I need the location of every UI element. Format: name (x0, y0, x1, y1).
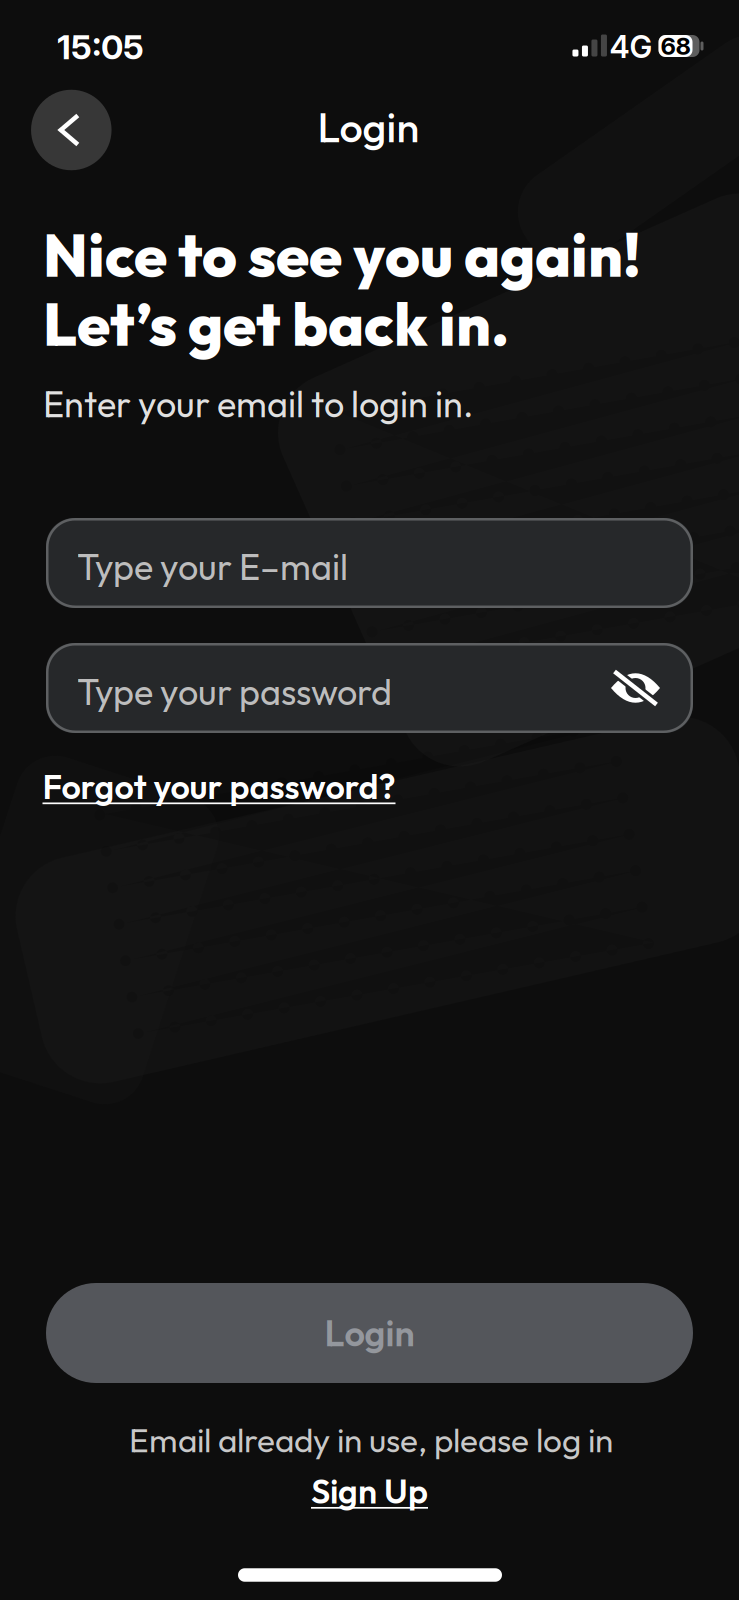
staticText: Forgot your password? (42, 765, 395, 808)
staticText: Nice to see you again! (43, 217, 641, 292)
button[interactable]: Sign Up (311, 1470, 428, 1512)
staticText: 15:05 (57, 26, 144, 67)
button[interactable]: Back (31, 90, 111, 170)
staticText: Login (317, 101, 419, 153)
staticText: 68 (660, 31, 690, 60)
staticText: Sign Up (311, 1470, 428, 1512)
staticText: Enter your email to login in. (43, 381, 473, 427)
staticText: Type your password (77, 669, 392, 714)
button[interactable]: Login (46, 1283, 693, 1383)
staticText: 4G (609, 28, 652, 65)
staticText: Type your E–mail (77, 544, 348, 589)
button[interactable]: Forgot your password? (42, 765, 395, 808)
staticText: Let’s get back in. (43, 286, 509, 361)
staticText: Login (324, 1310, 414, 1356)
button[interactable]: Type your E-mail (46, 518, 693, 608)
button[interactable]: Type your password (46, 643, 693, 733)
staticText: Email already in use, please log in (129, 1419, 613, 1461)
